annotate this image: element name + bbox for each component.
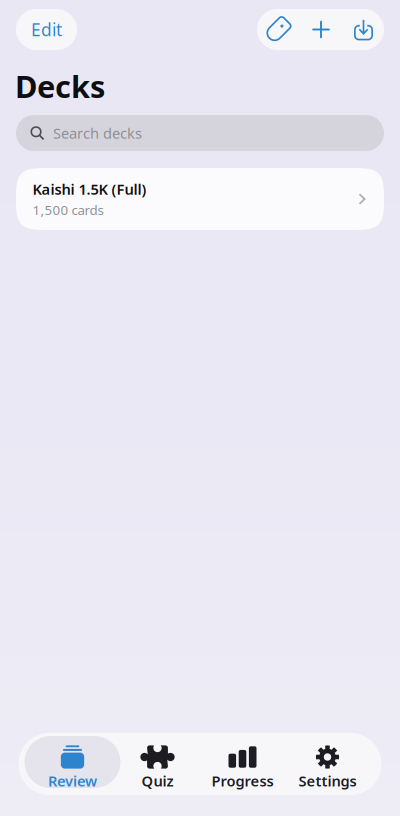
button[interactable]: Quiz (115, 733, 200, 794)
button[interactable]: Import deck (342, 9, 384, 50)
staticText: Kaishi 1.5K (Full) (32, 179, 146, 199)
button[interactable]: Edit (16, 9, 77, 50)
button[interactable]: Progress (200, 733, 285, 794)
staticText: Settings (298, 771, 356, 790)
button[interactable]: Settings (285, 733, 370, 794)
staticText: Quiz (141, 771, 173, 790)
button[interactable]: New deck (299, 9, 342, 50)
staticText: Edit (31, 18, 62, 41)
staticText: Progress (211, 771, 273, 790)
button[interactable]: Review (30, 733, 115, 794)
staticText: 1,500 cards (32, 201, 103, 219)
staticText: Review (48, 771, 97, 790)
button[interactable]: Tags (256, 9, 299, 50)
staticText: Decks (15, 66, 105, 106)
button[interactable]: Kaishi 1.5K (Full) (16, 168, 384, 230)
staticText: Search decks (53, 123, 142, 143)
